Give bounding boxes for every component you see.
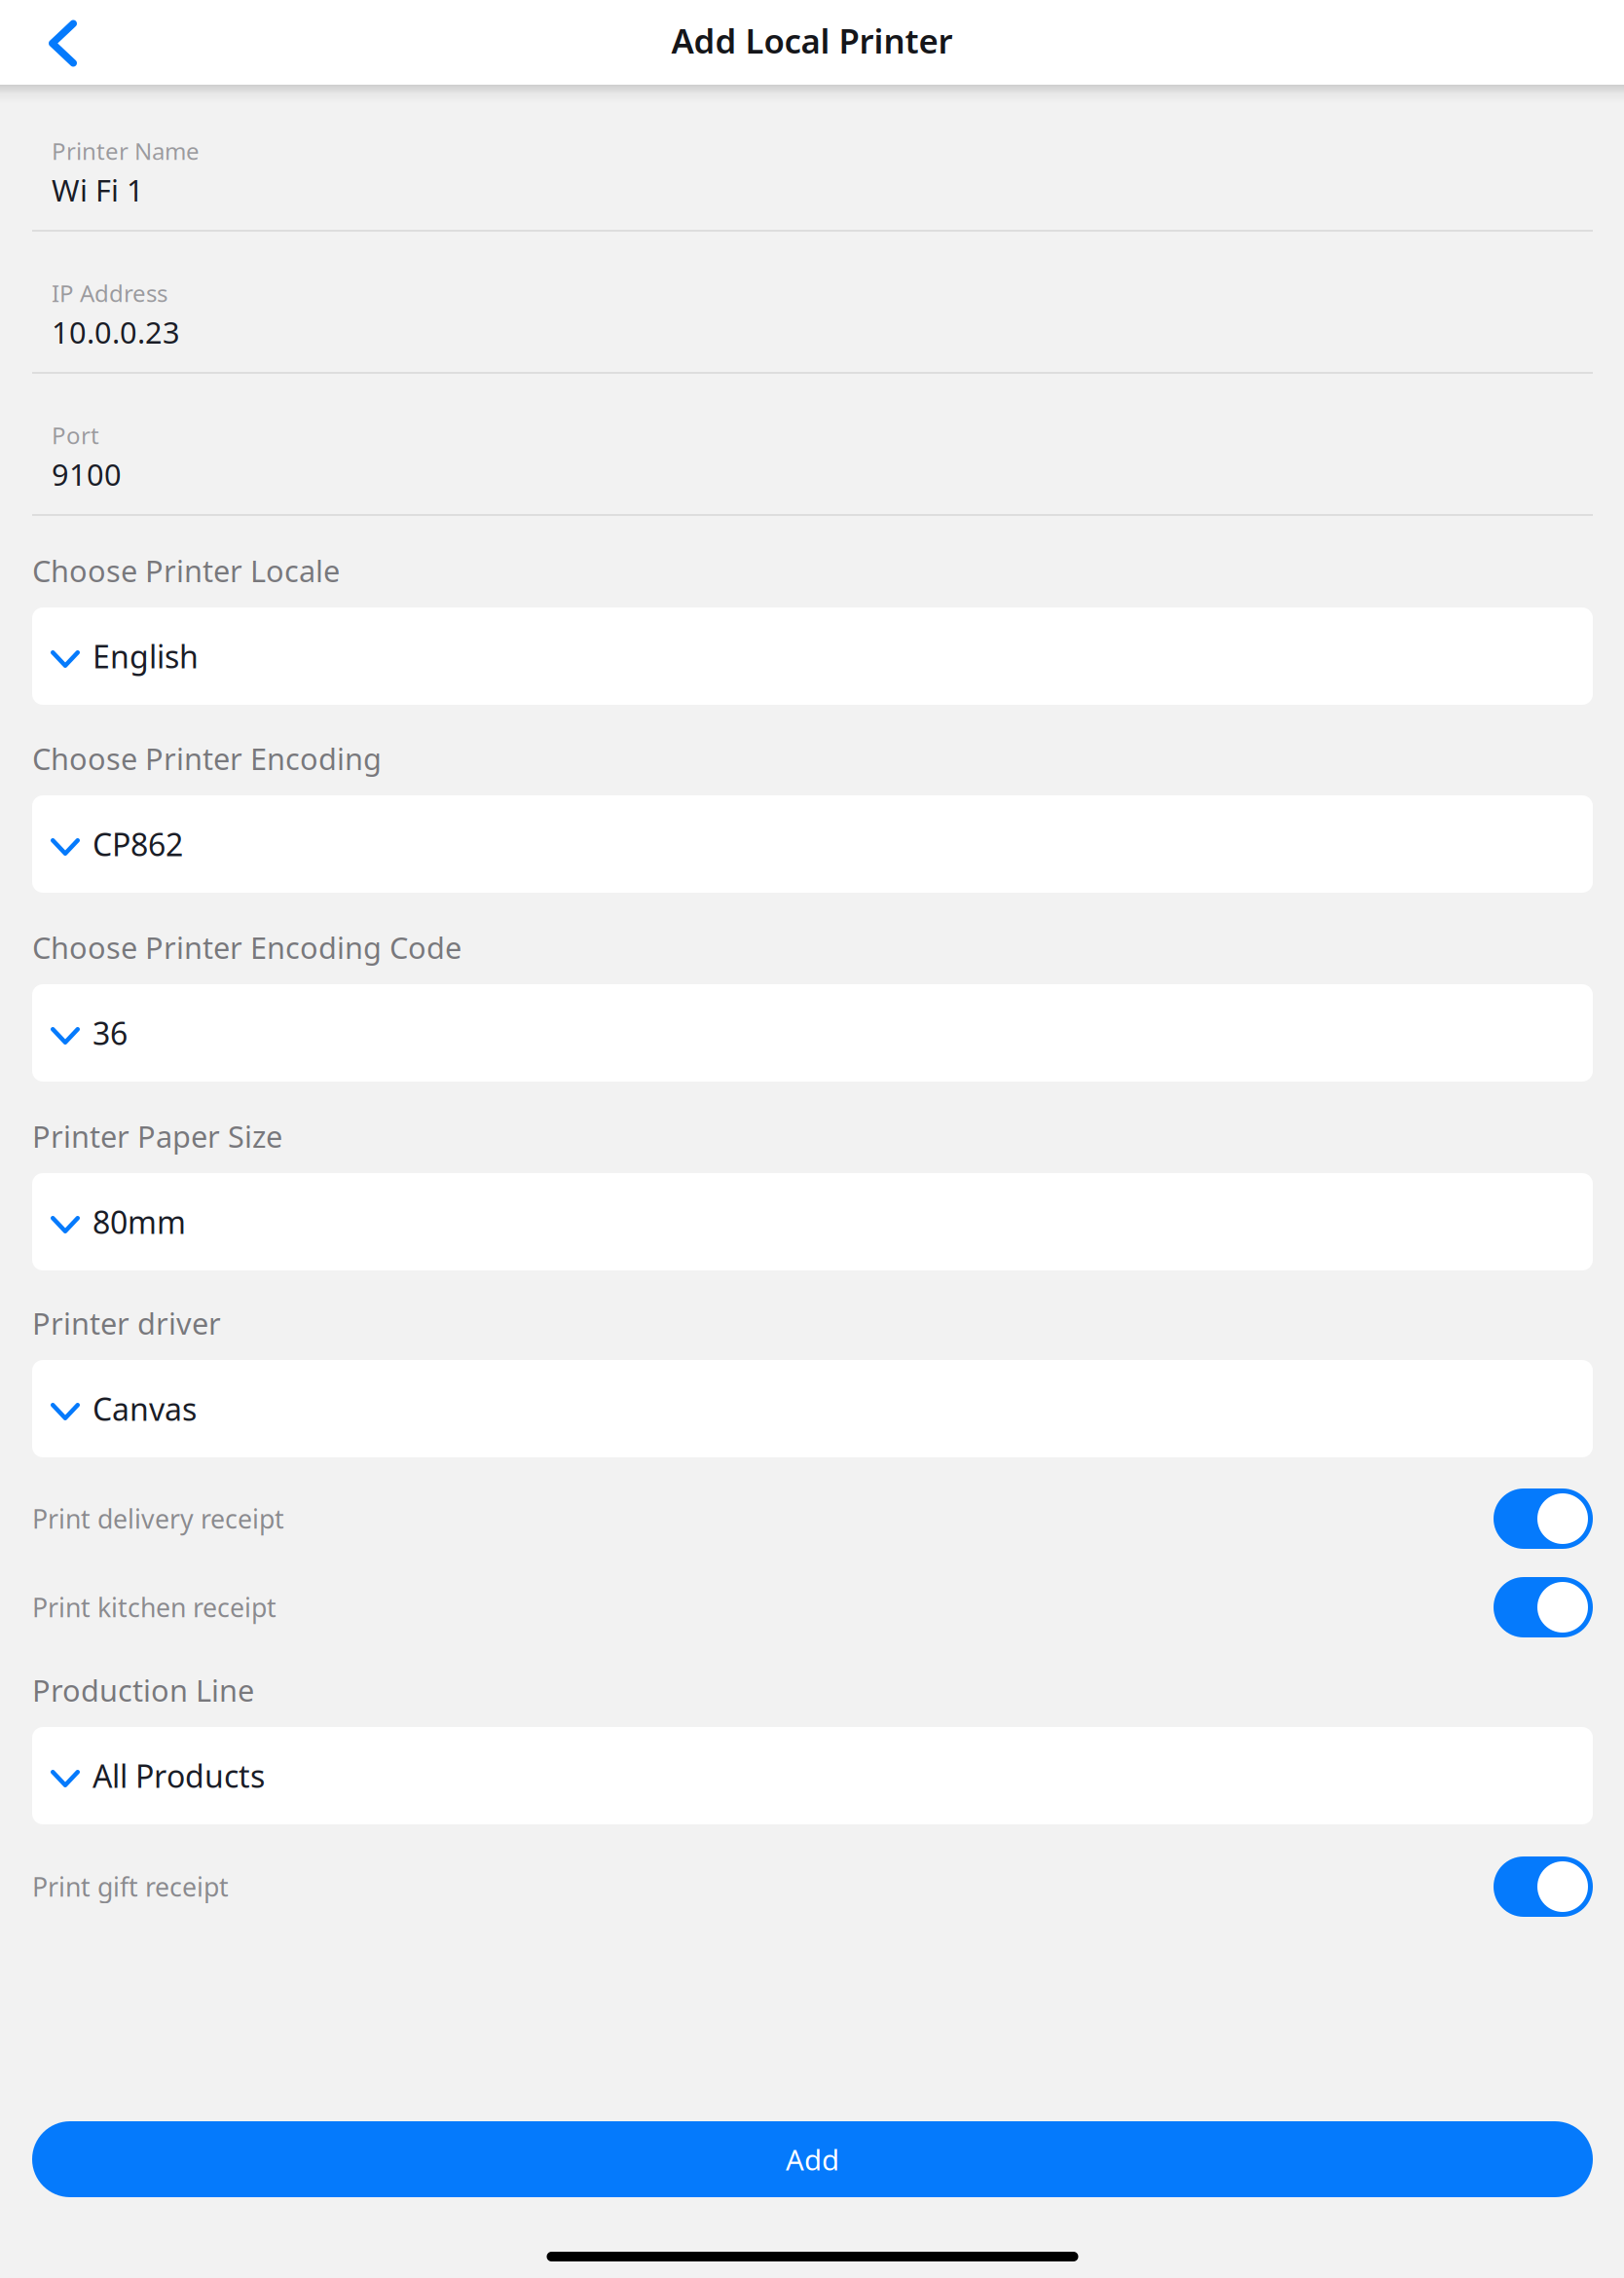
button[interactable]: Print kitchen receipt: [32, 1577, 1593, 1637]
staticText: Print kitchen receipt: [32, 1590, 277, 1624]
button[interactable]: Add: [32, 2121, 1593, 2197]
staticText: Printer driver: [32, 1303, 221, 1343]
button[interactable]: All Products: [32, 1727, 1593, 1824]
button[interactable]: CP862: [32, 795, 1593, 893]
staticText: All Products: [92, 1755, 265, 1796]
staticText: Canvas: [92, 1388, 197, 1429]
staticText: CP862: [92, 823, 183, 865]
staticText: Printer Name: [52, 135, 200, 166]
staticText: Printer Paper Size: [32, 1116, 282, 1156]
staticText: IP Address: [52, 278, 167, 309]
staticText: Choose Printer Encoding: [32, 739, 382, 778]
staticText: Choose Printer Locale: [32, 551, 340, 590]
staticText: Add: [786, 2140, 839, 2178]
button[interactable]: Back: [0, 0, 136, 85]
staticText: English: [92, 636, 199, 677]
staticText: 36: [92, 1012, 128, 1054]
staticText: Production Line: [32, 1670, 254, 1710]
staticText: Print gift receipt: [32, 1869, 229, 1904]
button[interactable]: 36: [32, 984, 1593, 1082]
button[interactable]: Print delivery receipt: [32, 1488, 1593, 1549]
staticText: Print delivery receipt: [32, 1501, 284, 1536]
staticText: Wi Fi 1: [52, 170, 144, 210]
button[interactable]: Print gift receipt: [32, 1856, 1593, 1917]
staticText: 10.0.0.23: [52, 312, 180, 352]
button[interactable]: Canvas: [32, 1360, 1593, 1457]
button[interactable]: 80mm: [32, 1173, 1593, 1270]
staticText: Add Local Printer: [671, 18, 953, 63]
button[interactable]: English: [32, 607, 1593, 705]
staticText: 80mm: [92, 1201, 186, 1242]
staticText: Port: [52, 420, 99, 451]
staticText: 9100: [52, 454, 122, 494]
staticText: Choose Printer Encoding Code: [32, 927, 461, 967]
